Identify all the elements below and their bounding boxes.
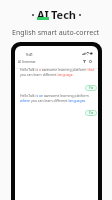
staticText: HelloTalk is a awesome learning platform…: [20, 67, 96, 77]
staticText: HelloTalk is an awesome learning platfor…: [20, 93, 96, 103]
staticText: AI: [37, 7, 49, 22]
button[interactable]: Apply correction: [85, 85, 97, 91]
button[interactable]: Text format: [82, 59, 87, 64]
button[interactable]: Apply correction: [85, 110, 97, 116]
staticText: Fix: [89, 86, 94, 90]
staticText: 9:41: [26, 52, 33, 57]
button[interactable]: Settings: [88, 59, 93, 64]
staticText: Fix: [89, 111, 94, 115]
staticText: AI Grammar: [18, 60, 36, 64]
staticText: Tech: [51, 7, 76, 22]
staticText: English smart auto-correct: [12, 28, 100, 38]
